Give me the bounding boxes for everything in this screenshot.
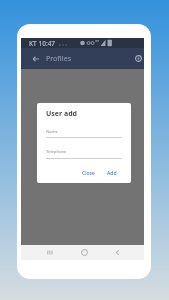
- staticText: Close: [82, 170, 95, 177]
- staticText: Name: [46, 129, 58, 135]
- button[interactable]: Back: [109, 245, 125, 260]
- button[interactable]: Back: [28, 48, 44, 69]
- staticText: User add: [46, 109, 77, 119]
- staticText: Telephone: [46, 149, 67, 155]
- button[interactable]: Home: [76, 245, 92, 260]
- staticText: Add: [107, 170, 117, 177]
- staticText: KT 10:47: [29, 39, 56, 48]
- button[interactable]: Recent apps: [41, 245, 57, 260]
- staticText: Profiles: [46, 54, 72, 64]
- button[interactable]: Add profile: [132, 48, 145, 69]
- button[interactable]: Add: [104, 167, 120, 179]
- button[interactable]: Close: [79, 167, 97, 179]
